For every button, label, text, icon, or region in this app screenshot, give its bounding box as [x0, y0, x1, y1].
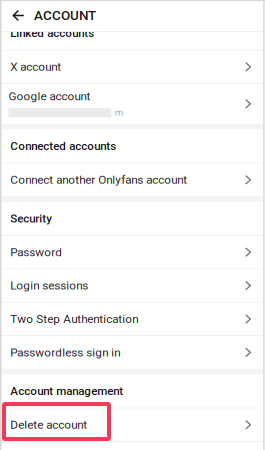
button[interactable]: Back — [2, 0, 34, 31]
staticText: Delete account — [10, 418, 87, 432]
button[interactable]: Passwordless sign in — [2, 336, 263, 369]
button[interactable]: Google account — [2, 84, 263, 124]
staticText: m — [115, 107, 123, 118]
button[interactable]: Connect another Onlyfans account — [2, 164, 263, 196]
button[interactable]: Delete account — [2, 409, 263, 441]
staticText: Security — [10, 212, 52, 225]
staticText: X account — [10, 60, 61, 74]
button[interactable]: X account — [2, 51, 263, 83]
staticText: Account management — [10, 384, 123, 398]
staticText: Google account — [8, 89, 90, 103]
button[interactable]: Two Step Authentication — [2, 303, 263, 335]
staticText: ACCOUNT — [34, 8, 96, 23]
staticText: Connected accounts — [10, 139, 116, 153]
button[interactable]: Password — [2, 236, 263, 268]
button[interactable]: Login sessions — [2, 269, 263, 302]
staticText: Passwordless sign in — [10, 345, 120, 359]
staticText: Connect another Onlyfans account — [10, 173, 187, 187]
staticText: Password — [10, 245, 62, 259]
staticText: Linked accounts — [10, 26, 94, 40]
staticText: Login sessions — [10, 279, 88, 292]
staticText: Two Step Authentication — [10, 312, 138, 326]
